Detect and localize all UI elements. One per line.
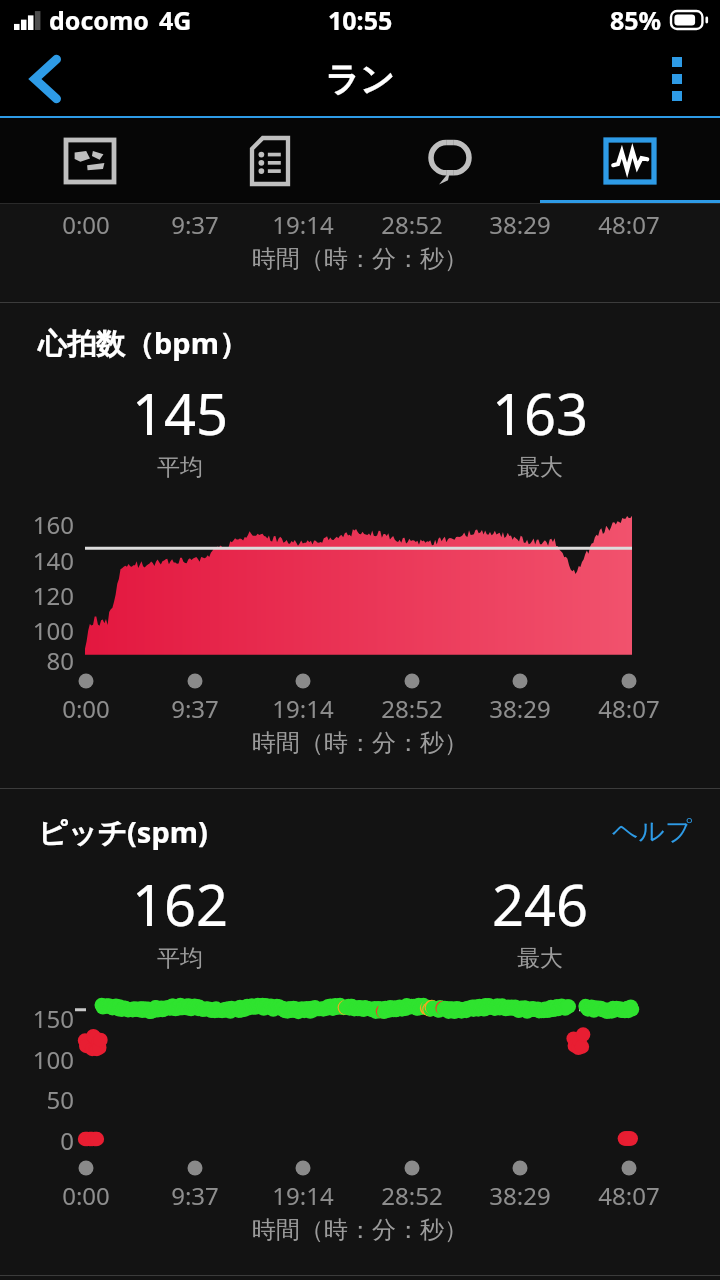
staticText: 38:29 [450, 208, 590, 238]
staticText: 150 [0, 1002, 74, 1035]
staticText: 0:00 [16, 208, 156, 238]
staticText: 120 [0, 579, 74, 612]
staticText: 9:37 [125, 1179, 265, 1209]
staticText: 140 [0, 544, 74, 577]
staticText: 48:07 [559, 1179, 699, 1209]
staticText: 246 [492, 866, 589, 942]
staticText: 0:00 [16, 1179, 156, 1209]
staticText: 9:37 [125, 208, 265, 238]
staticText: 38:29 [450, 692, 590, 722]
staticText: ヘルプ [612, 815, 692, 848]
staticText: ラン [325, 58, 395, 101]
button[interactable]: Laps [360, 118, 540, 204]
staticText: 9:37 [125, 692, 265, 722]
staticText: 163 [492, 375, 589, 451]
staticText: docomo [49, 3, 149, 37]
button[interactable]: ヘルプ [592, 809, 720, 854]
staticText: 19:14 [233, 208, 373, 238]
staticText: ピッチ(spm) [38, 812, 208, 852]
staticText: 145 [132, 375, 229, 451]
staticText: 85% [610, 3, 662, 37]
staticText: 100 [0, 614, 74, 647]
staticText: 160 [0, 508, 74, 541]
staticText: 時間（時：分：秒） [0, 1215, 720, 1245]
staticText: 19:14 [233, 1179, 373, 1209]
staticText: 50 [0, 1083, 74, 1116]
staticText: 4G [159, 3, 192, 37]
staticText: 時間（時：分：秒） [0, 728, 720, 758]
staticText: 38:29 [450, 1179, 590, 1209]
staticText: 28:52 [342, 1179, 482, 1209]
staticText: 平均 [157, 944, 203, 973]
staticText: 平均 [157, 453, 203, 482]
staticText: 28:52 [342, 692, 482, 722]
staticText: 162 [132, 866, 229, 942]
button[interactable]: Details [180, 118, 360, 204]
staticText: 心拍数（bpm） [38, 323, 248, 363]
staticText: 100 [0, 1043, 74, 1076]
button[interactable]: Map [0, 118, 180, 204]
staticText: 最大 [517, 944, 563, 973]
staticText: 最大 [517, 453, 563, 482]
staticText: 時間（時：分：秒） [0, 244, 720, 274]
staticText: 10:55 [328, 3, 393, 37]
staticText: 80 [0, 644, 74, 677]
staticText: 0:00 [16, 692, 156, 722]
staticText: 19:14 [233, 692, 373, 722]
staticText: 28:52 [342, 208, 482, 238]
staticText: 48:07 [559, 692, 699, 722]
staticText: 0 [0, 1124, 74, 1157]
button[interactable]: Charts [540, 118, 720, 204]
button[interactable]: Back [0, 40, 92, 118]
button[interactable]: More options [634, 40, 720, 118]
staticText: 48:07 [559, 208, 699, 238]
